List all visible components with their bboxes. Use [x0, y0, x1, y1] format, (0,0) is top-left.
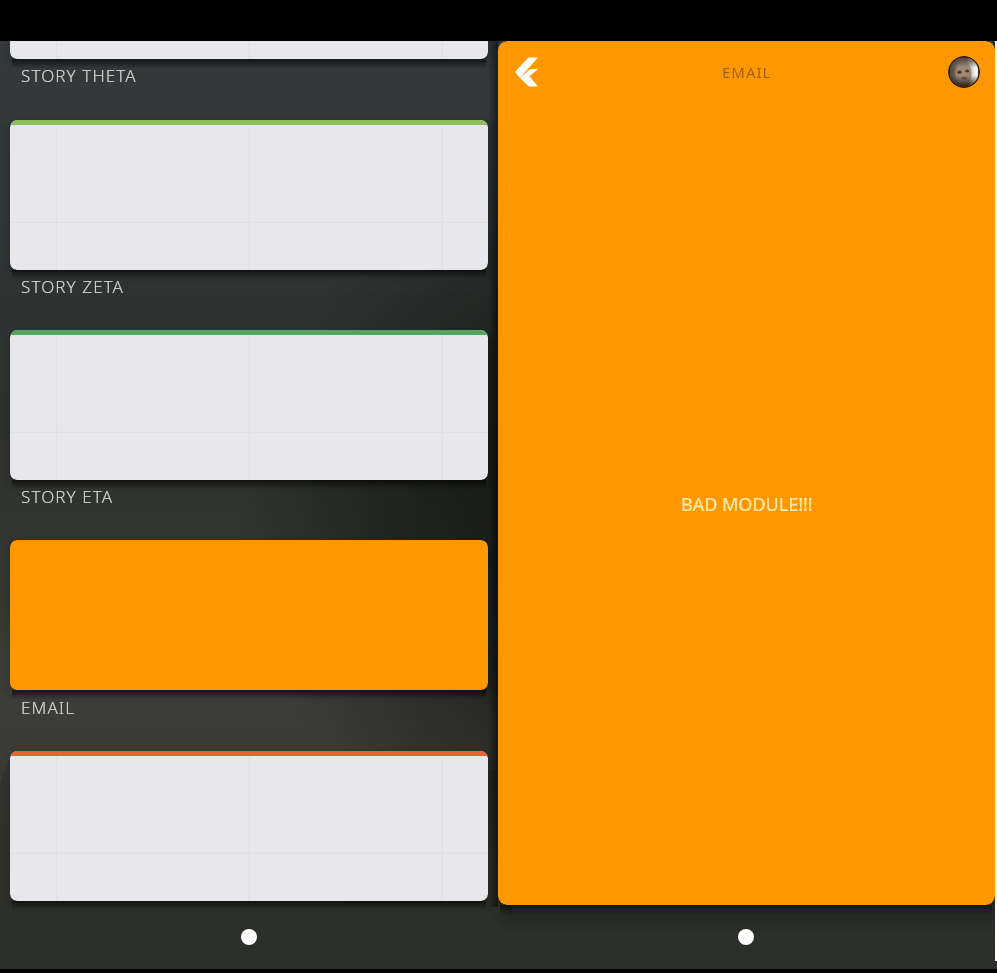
button[interactable]: Profile: [948, 56, 980, 88]
button[interactable]: Home: [241, 929, 257, 945]
button[interactable]: [10, 330, 488, 480]
staticText: STORY THETA: [21, 64, 137, 87]
button[interactable]: [10, 120, 488, 270]
button[interactable]: [10, 0, 488, 59]
staticText: STORY ETA: [21, 485, 114, 508]
staticText: BAD MODULE!!!: [681, 492, 813, 517]
button[interactable]: Home: [738, 929, 754, 945]
staticText: EMAIL: [21, 696, 76, 719]
button[interactable]: [10, 751, 488, 901]
staticText: STORY ZETA: [21, 275, 125, 298]
staticText: EMAIL: [722, 62, 772, 82]
button[interactable]: [10, 540, 488, 690]
button[interactable]: Back: [504, 50, 548, 94]
